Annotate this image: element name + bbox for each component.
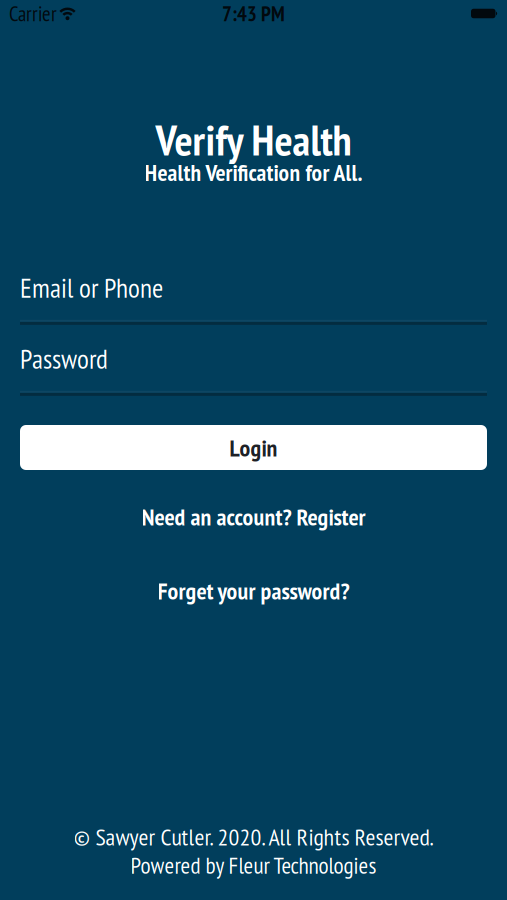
staticText: Login [229, 432, 277, 463]
button[interactable]: Forget your password? [0, 0, 507, 606]
button[interactable]: Email or Phone [20, 270, 487, 325]
staticText: Email or Phone [20, 270, 163, 305]
staticText: © Sawyer Cutler. 2020. All Rights Reserv… [73, 821, 433, 852]
staticText: Carrier [9, 0, 57, 27]
button[interactable]: Need an account? Register [0, 0, 507, 532]
staticText: Need an account? Register [141, 501, 365, 532]
staticText: Forget your password? [157, 575, 349, 606]
button[interactable]: Password [20, 341, 487, 396]
staticText: 7:43 PM [222, 0, 285, 27]
button[interactable]: Login [20, 425, 487, 470]
staticText: Verify Health [155, 112, 351, 167]
staticText: Health Verification for All. [144, 157, 362, 187]
staticText: Password [20, 341, 108, 376]
staticText: Powered by Fleur Technologies [130, 850, 376, 880]
